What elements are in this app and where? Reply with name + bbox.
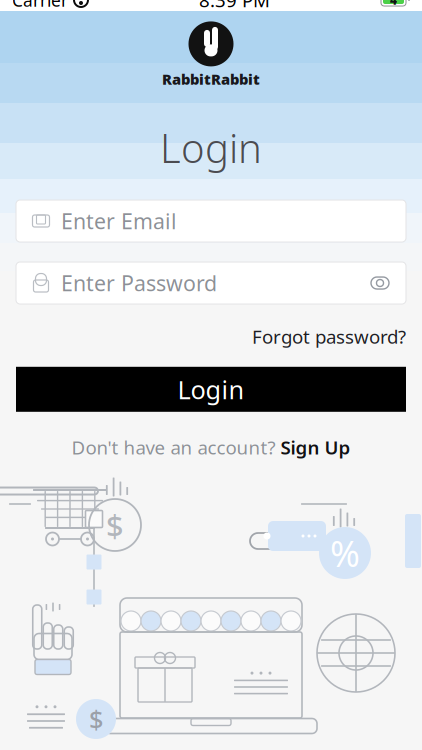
staticText: $: [106, 505, 124, 545]
button[interactable]: Show password: [360, 266, 390, 300]
staticText: 8:39 PM: [199, 0, 270, 12]
button[interactable]: Sign Up: [280, 430, 350, 465]
staticText: 4: [390, 0, 397, 8]
staticText: Forgot password?: [252, 324, 406, 349]
staticText: Sign Up: [280, 435, 350, 460]
staticText: Login: [177, 372, 244, 406]
staticText: Don't have an account?: [71, 435, 275, 460]
staticText: Enter Password: [61, 269, 217, 297]
button[interactable]: Forgot password?: [252, 318, 406, 355]
staticText: $: [89, 702, 103, 736]
staticText: Carrier: [12, 0, 68, 11]
staticText: Enter Email: [61, 207, 177, 235]
staticText: %: [330, 529, 360, 577]
staticText: RabbitRabbit: [162, 69, 260, 89]
button[interactable]: Login: [16, 367, 406, 412]
staticText: Login: [160, 121, 262, 174]
